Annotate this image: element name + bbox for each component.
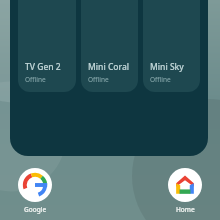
staticText: Google xyxy=(24,205,47,214)
button[interactable]: TV xyxy=(10,0,208,156)
button[interactable]: Speaker xyxy=(143,0,200,92)
staticText: Mini Sky xyxy=(150,61,184,73)
staticText: Offline xyxy=(25,75,46,84)
staticText: Offline xyxy=(150,75,171,84)
button[interactable]: Speaker xyxy=(81,0,138,92)
button[interactable]: Google xyxy=(18,168,52,202)
staticText: Offline xyxy=(88,75,109,84)
staticText: Home xyxy=(176,205,195,214)
staticText: TV Gen 2 xyxy=(25,61,61,73)
button[interactable]: TV xyxy=(18,0,76,92)
button[interactable]: Home xyxy=(168,168,202,202)
staticText: Mini Coral xyxy=(88,61,130,73)
